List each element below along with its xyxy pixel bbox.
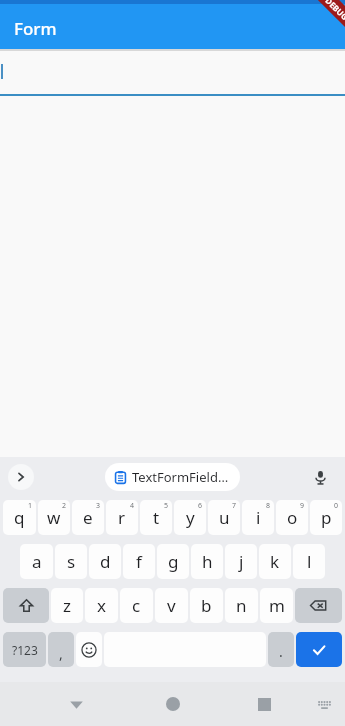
staticText: TextFormField… (132, 468, 229, 486)
button[interactable]: Voice input (307, 464, 333, 490)
button[interactable]: f (123, 544, 155, 579)
staticText: 8 (266, 501, 271, 511)
staticText: , (59, 644, 63, 663)
button[interactable]: Shift (3, 588, 49, 623)
button[interactable]: Home (155, 686, 191, 722)
staticText: u (219, 506, 230, 529)
button[interactable]: . (268, 632, 294, 667)
button[interactable]: m (260, 588, 293, 623)
staticText: q (14, 506, 25, 529)
button[interactable]: b (190, 588, 223, 623)
staticText: v (167, 594, 176, 617)
button[interactable]: o (276, 500, 308, 535)
staticText: c (132, 594, 141, 617)
button[interactable]: Done (296, 632, 342, 667)
staticText: . (279, 642, 283, 661)
staticText: 5 (164, 501, 169, 511)
staticText: 4 (130, 501, 135, 511)
staticText: f (136, 550, 142, 573)
button[interactable]: z (51, 588, 83, 623)
button[interactable]: q (3, 500, 36, 535)
button[interactable]: s (55, 544, 87, 579)
staticText: k (270, 550, 280, 573)
button[interactable]: Expand suggestions (8, 464, 34, 490)
button[interactable]: w (38, 500, 70, 535)
staticText: 0 (334, 501, 339, 511)
button[interactable]: i (242, 500, 274, 535)
staticText: t (153, 506, 160, 529)
button[interactable]: a (20, 544, 53, 579)
staticText: 6 (198, 501, 203, 511)
button[interactable]: , (48, 632, 74, 667)
staticText: p (321, 506, 332, 529)
button[interactable]: u (208, 500, 240, 535)
button[interactable]: Backspace (295, 588, 342, 623)
staticText: i (256, 506, 261, 529)
staticText: x (97, 594, 106, 617)
button[interactable]: h (191, 544, 223, 579)
button[interactable]: Recents (246, 686, 282, 722)
button[interactable]: d (89, 544, 121, 579)
button[interactable]: Emoji (76, 632, 102, 667)
button[interactable]: n (225, 588, 258, 623)
staticText: r (118, 506, 126, 529)
button[interactable]: t (140, 500, 172, 535)
staticText: w (47, 506, 61, 529)
button[interactable]: x (85, 588, 118, 623)
button[interactable]: y (174, 500, 206, 535)
button[interactable]: TextFormField… (114, 468, 229, 486)
button[interactable]: Back (58, 686, 94, 722)
staticText: m (269, 594, 285, 617)
staticText: z (63, 594, 71, 617)
button[interactable]: l (293, 544, 325, 579)
staticText: 1 (28, 501, 33, 511)
staticText: 7 (232, 501, 237, 511)
staticText: s (67, 550, 76, 573)
button[interactable]: c (120, 588, 153, 623)
staticText: y (186, 506, 195, 529)
staticText: g (168, 550, 179, 573)
staticText: d (100, 550, 111, 573)
button[interactable]: Switch keyboard (309, 689, 339, 719)
button[interactable]: ?123 (3, 632, 46, 667)
staticText: ?123 (12, 642, 38, 658)
button[interactable]: p (310, 500, 342, 535)
button[interactable]: v (155, 588, 188, 623)
staticText: 9 (300, 501, 305, 511)
staticText: n (236, 594, 247, 617)
button[interactable]: j (225, 544, 257, 579)
staticText: b (201, 594, 212, 617)
button[interactable]: r (106, 500, 138, 535)
staticText: DEBUG (323, 0, 345, 22)
staticText: h (202, 550, 213, 573)
button[interactable] (0, 51, 345, 96)
button[interactable]: e (72, 500, 104, 535)
staticText: j (239, 550, 244, 573)
staticText: Form (14, 17, 57, 40)
staticText: 2 (62, 501, 67, 511)
staticText: e (83, 506, 93, 529)
button[interactable]: k (259, 544, 291, 579)
staticText: 3 (96, 501, 101, 511)
staticText: l (307, 550, 312, 573)
button[interactable]: g (157, 544, 189, 579)
staticText: a (32, 550, 42, 573)
staticText: o (287, 506, 298, 529)
